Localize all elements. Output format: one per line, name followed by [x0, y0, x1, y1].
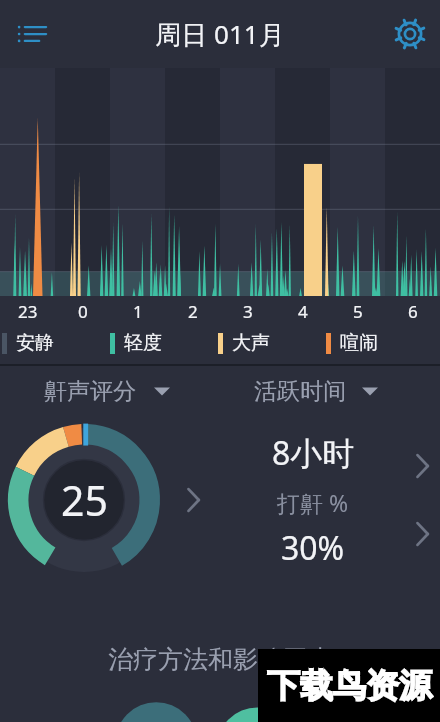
staticText: 5	[353, 300, 363, 323]
button[interactable]: Menu	[6, 8, 58, 60]
staticText: 周日 011月	[155, 16, 285, 52]
button[interactable]: 8小时	[220, 431, 406, 475]
button[interactable]: 鼾声评分	[0, 366, 220, 416]
button[interactable]: More details	[412, 449, 434, 483]
button[interactable]: 25	[0, 416, 220, 584]
staticText: 30%	[281, 526, 345, 570]
staticText: 鼾声评分	[44, 377, 136, 406]
button[interactable]: 治疗方法和影响因素	[0, 644, 440, 675]
staticText: 轻度	[124, 331, 162, 355]
staticText: 治疗方法和影响因素	[108, 644, 333, 675]
button[interactable]: 30%	[220, 526, 406, 570]
button[interactable]: 喧闹	[326, 326, 434, 360]
other: More details	[412, 517, 434, 551]
other: More details	[183, 483, 205, 517]
staticText: 安静	[16, 331, 54, 355]
other: More details	[412, 449, 434, 483]
staticText: 0	[78, 300, 88, 323]
button[interactable]: 安静	[2, 326, 110, 360]
button[interactable]: More details	[412, 517, 434, 551]
staticText: 下载鸟资源	[267, 665, 432, 707]
button[interactable]: 周日 011月	[155, 16, 285, 52]
staticText: 1	[133, 300, 143, 323]
staticText: 8小时	[272, 431, 355, 475]
staticText: 25	[61, 472, 108, 528]
staticText: 4	[298, 300, 308, 323]
button[interactable]: Settings	[384, 8, 436, 60]
button[interactable]: 活跃时间	[220, 366, 440, 416]
staticText: 喧闹	[340, 331, 378, 355]
button[interactable]: 大声	[218, 326, 326, 360]
staticText: 2	[188, 300, 198, 323]
staticText: 大声	[232, 331, 270, 355]
button[interactable]: 轻度	[110, 326, 218, 360]
staticText: 6	[408, 300, 418, 323]
staticText: 3	[243, 300, 253, 323]
staticText: 打鼾 %	[277, 487, 349, 518]
staticText: 23	[18, 300, 38, 323]
staticText: 活跃时间	[254, 377, 346, 406]
